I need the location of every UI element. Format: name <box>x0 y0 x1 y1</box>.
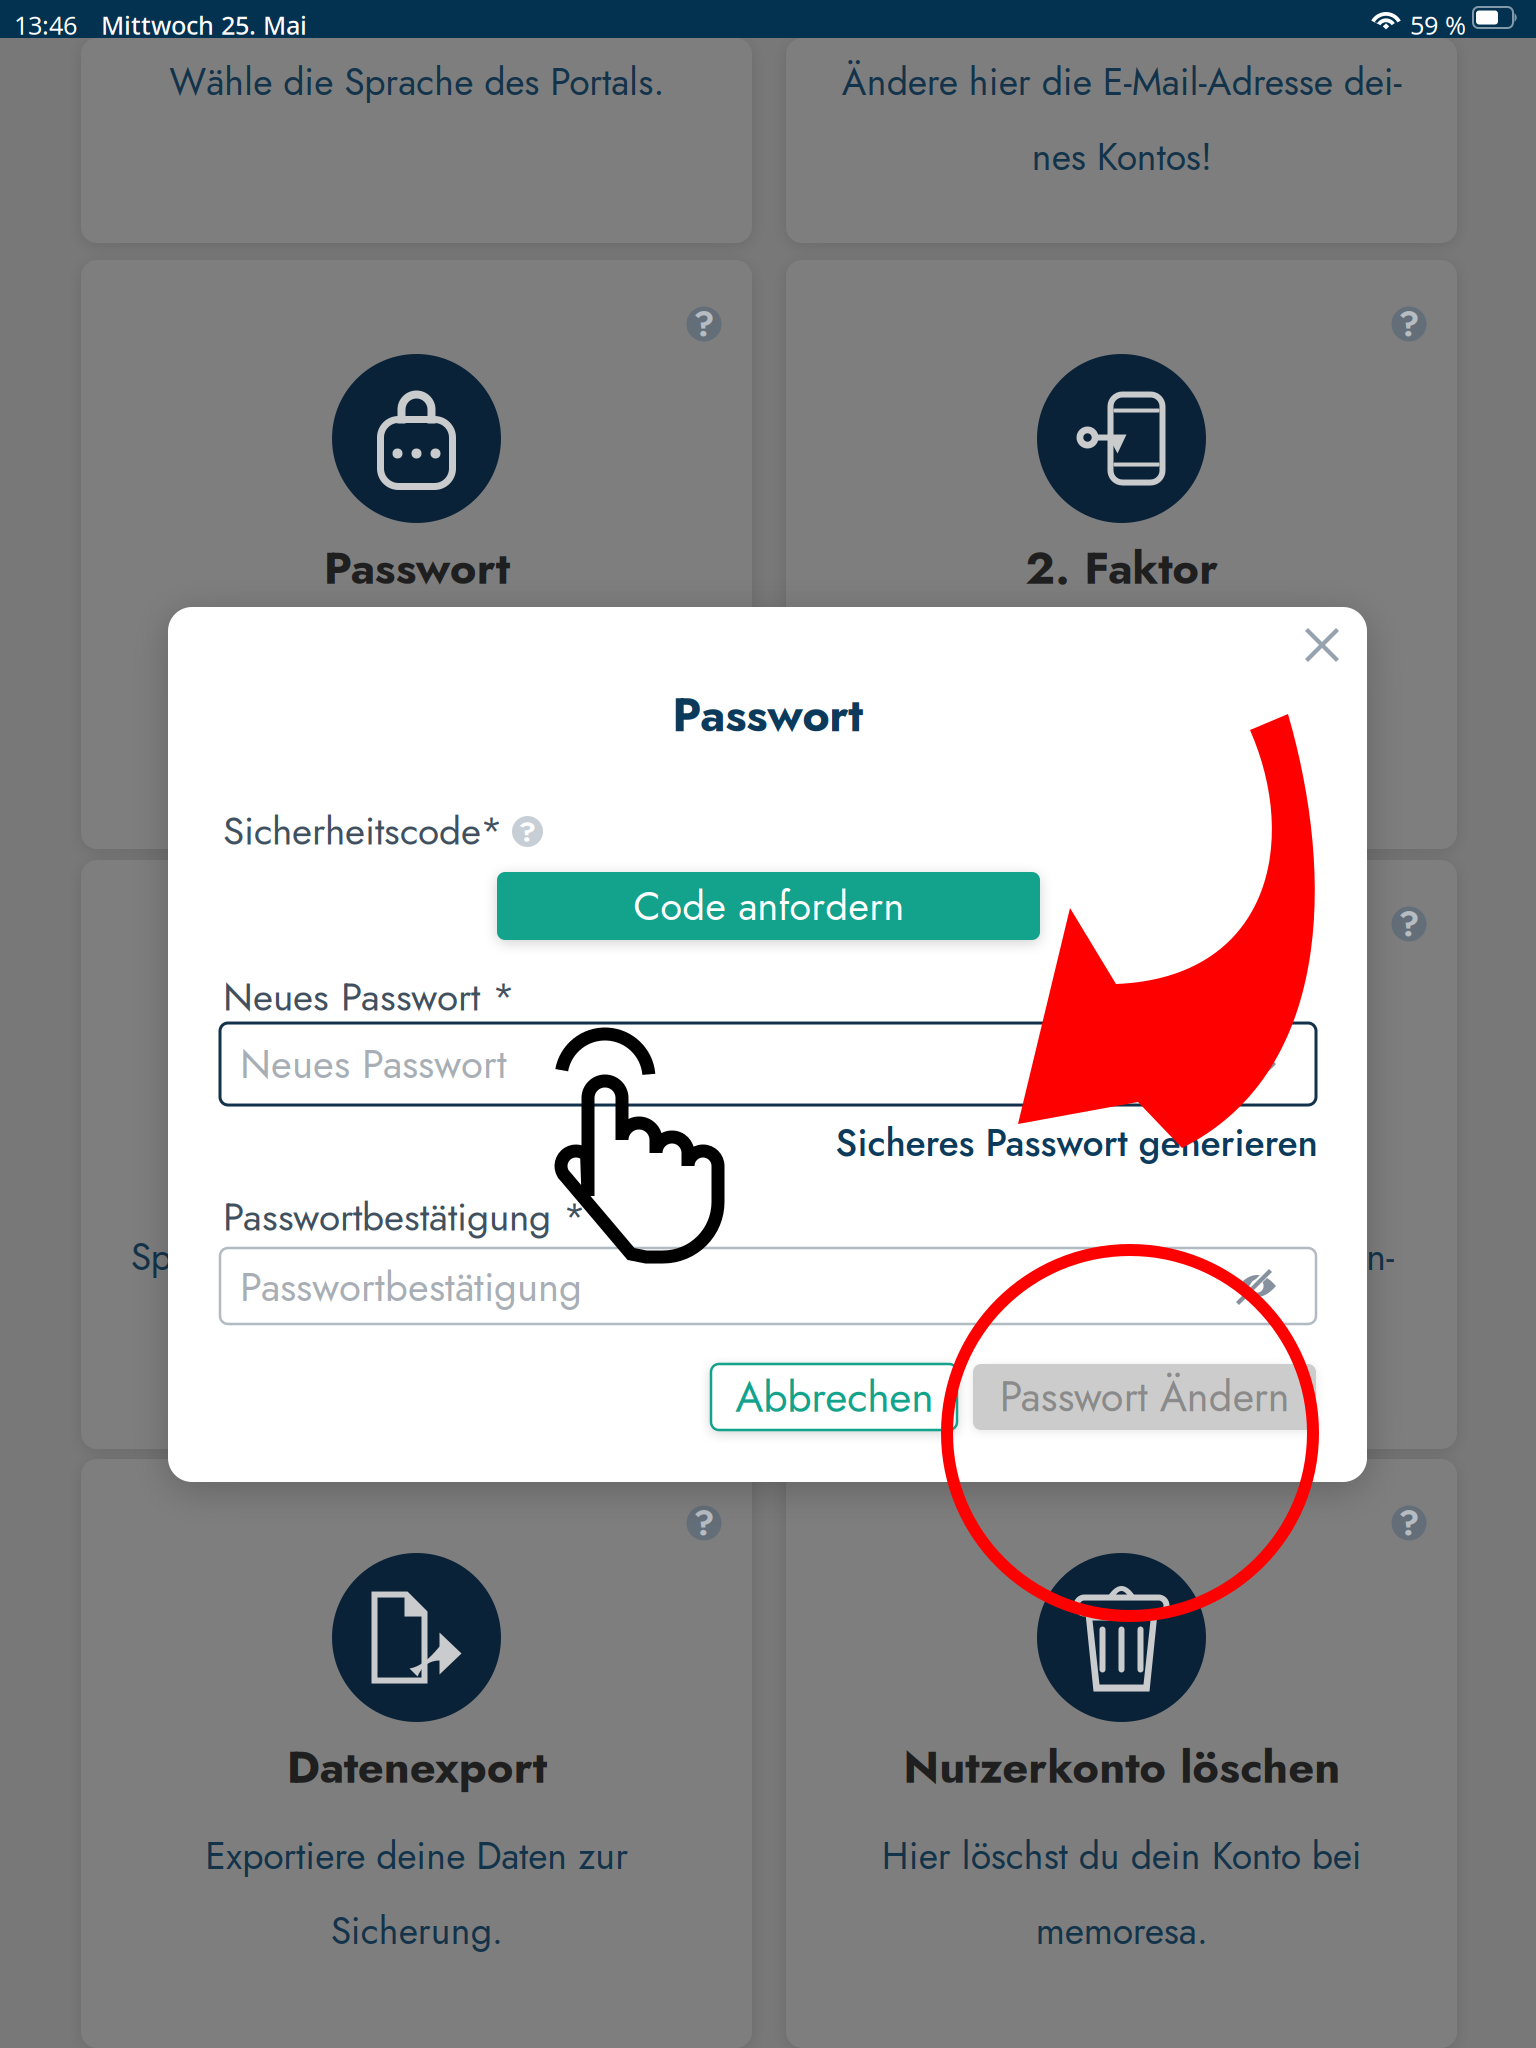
staticText: Verwalte hier die Benachrichtigun- gen d… <box>849 1230 1394 1359</box>
staticText: Sicherheitscode* <box>223 803 503 859</box>
staticText: Code anfordern <box>633 877 904 935</box>
staticText: Ändere hier die E-Mail-Adresse dei- nes … <box>841 55 1401 184</box>
staticText: Passwort Ändern <box>999 1367 1289 1427</box>
staticText: Benachrichtigung <box>937 1135 1306 1201</box>
staticText: Exportiere deine Daten zur Sicherung. <box>205 1829 628 1958</box>
staticText: Hier löschst du dein Konto bei memoresa. <box>881 1829 1361 1958</box>
button[interactable]: Abbrechen <box>711 1364 957 1430</box>
button[interactable]: Hilfe zum Sicherheitscode <box>512 816 543 847</box>
staticText: Wähle die Sprache des Portals. <box>169 55 664 109</box>
staticText: Speicherplatz deines Kontos bei me- more… <box>130 1230 702 1359</box>
staticText: Passwort <box>672 681 863 749</box>
button[interactable]: Hilfe zu Datenexport <box>686 1505 722 1541</box>
button[interactable]: ? <box>81 1459 752 2048</box>
button[interactable]: Hilfe zu Benachrichtigung <box>1391 906 1427 942</box>
button[interactable]: ? <box>81 260 752 849</box>
button[interactable]: Sicheres Passwort generieren <box>777 1120 1317 1166</box>
staticText: Sicheres Passwort generieren <box>835 1116 1317 1170</box>
staticText: 59 % <box>1410 8 1466 42</box>
staticText: Passwortbestätigung <box>240 1258 582 1316</box>
button[interactable]: Hilfe zu 2. Faktor <box>1391 306 1427 342</box>
button[interactable]: Hilfe zu Passwort <box>686 306 722 342</box>
button[interactable]: ? <box>786 1459 1457 2048</box>
staticText: Datenexport <box>286 1734 546 1800</box>
staticText: ? <box>1398 300 1419 348</box>
button[interactable]: ? <box>786 860 1457 1449</box>
staticText: 2. Faktor <box>1025 535 1218 601</box>
staticText: Aktiviere hier den 2. Faktor für mehr Si… <box>880 630 1363 759</box>
button[interactable]: Passwort Ändern <box>973 1364 1316 1430</box>
button[interactable]: ? <box>81 860 752 1449</box>
button[interactable]: ? <box>786 260 1457 849</box>
button[interactable]: Schließen <box>1291 614 1353 676</box>
staticText: Passwort <box>323 535 509 601</box>
staticText: Speicherplatz <box>271 1135 561 1201</box>
staticText: ? <box>518 811 536 852</box>
staticText: ? <box>693 1499 714 1547</box>
staticText: 13:46 <box>14 8 77 42</box>
button[interactable]: Code anfordern <box>497 872 1040 940</box>
staticText: ? <box>693 900 714 948</box>
staticText: Abbrechen <box>735 1366 933 1428</box>
staticText: Nutzerkonto löschen <box>903 1734 1340 1800</box>
button[interactable]: Hilfe zu Speicherplatz <box>686 906 722 942</box>
staticText: Neues Passwort * <box>223 969 515 1025</box>
staticText: ? <box>1398 900 1419 948</box>
staticText: Mittwoch 25. Mai <box>101 8 307 42</box>
staticText: Passwortbestätigung * <box>223 1189 586 1245</box>
staticText: ? <box>1398 1499 1419 1547</box>
staticText: Neues Passwort <box>240 1035 507 1093</box>
staticText: ? <box>693 300 714 348</box>
button[interactable]: Hilfe zu Nutzerkonto löschen <box>1391 1505 1427 1541</box>
